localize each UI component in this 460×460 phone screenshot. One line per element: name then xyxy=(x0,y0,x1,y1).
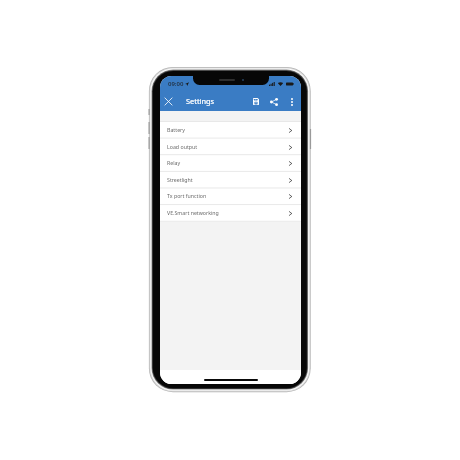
button[interactable]: Relay xyxy=(160,155,301,171)
staticText: Tx port function xyxy=(167,192,207,199)
button[interactable]: More options xyxy=(284,92,300,111)
staticText: VE.Smart networking xyxy=(167,209,219,216)
button[interactable]: Battery xyxy=(160,122,301,138)
staticText: Streetlight xyxy=(167,176,193,183)
button[interactable]: Close xyxy=(161,92,175,111)
button[interactable]: Tx port function xyxy=(160,188,301,204)
button[interactable]: Share xyxy=(266,92,282,111)
staticText: Settings xyxy=(186,96,215,106)
staticText: Load output xyxy=(167,143,198,150)
button[interactable]: VE.Smart networking xyxy=(160,205,301,221)
button[interactable]: Load output xyxy=(160,139,301,155)
staticText: Relay xyxy=(167,159,181,166)
staticText: Battery xyxy=(167,126,185,133)
button[interactable]: Streetlight xyxy=(160,172,301,188)
staticText: 09:00 xyxy=(168,80,184,88)
button[interactable]: Save xyxy=(248,92,264,111)
